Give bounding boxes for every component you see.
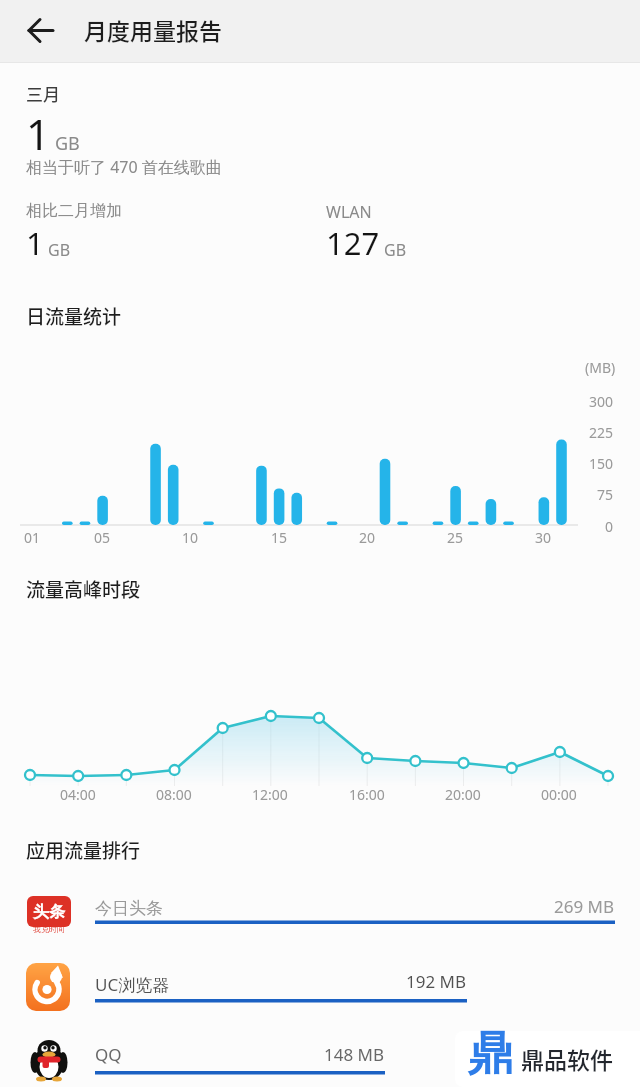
- staticText: 三月: [26, 81, 60, 106]
- staticText: 15: [271, 528, 288, 547]
- staticText: 鼎品软件: [521, 1042, 613, 1075]
- staticText: 25: [447, 528, 464, 547]
- staticText: 127: [326, 222, 380, 264]
- staticText: 相比二月增加: [26, 201, 122, 221]
- staticText: 应用流量排行: [26, 836, 141, 864]
- staticText: 30: [535, 528, 552, 547]
- button[interactable]: [16, 1028, 624, 1087]
- staticText: 269 MB: [554, 895, 615, 918]
- button[interactable]: [16, 956, 624, 1018]
- staticText: 头条: [33, 902, 65, 922]
- staticText: GB: [55, 131, 80, 156]
- staticText: 20:00: [445, 785, 481, 804]
- staticText: 1: [26, 105, 51, 162]
- staticText: GB: [384, 239, 407, 261]
- staticText: 16:00: [349, 785, 385, 804]
- staticText: 225: [589, 423, 614, 442]
- staticText: 鼎: [467, 1025, 513, 1083]
- staticText: 月度用量报告: [84, 13, 222, 46]
- staticText: 12:00: [252, 785, 288, 804]
- staticText: 01: [24, 528, 41, 547]
- staticText: 192 MB: [406, 970, 467, 993]
- staticText: 75: [597, 485, 614, 504]
- staticText: (MB): [585, 358, 616, 377]
- staticText: 我克时间: [33, 924, 65, 934]
- button[interactable]: [16, 886, 624, 948]
- staticText: 150: [589, 454, 614, 473]
- staticText: 00:00: [541, 785, 577, 804]
- staticText: 相当于听了 470 首在线歌曲: [26, 156, 222, 178]
- button[interactable]: [455, 1031, 640, 1087]
- staticText: 04:00: [60, 785, 96, 804]
- staticText: 300: [589, 392, 614, 411]
- staticText: 148 MB: [324, 1043, 385, 1066]
- staticText: WLAN: [326, 201, 372, 223]
- staticText: GB: [48, 239, 71, 261]
- staticText: 0: [605, 517, 614, 536]
- staticText: 05: [94, 528, 111, 547]
- staticText: 流量高峰时段: [26, 575, 141, 603]
- staticText: UC浏览器: [95, 973, 170, 996]
- staticText: 日流量统计: [26, 302, 122, 330]
- button[interactable]: [16, 6, 66, 56]
- staticText: 今日头条: [95, 898, 163, 919]
- staticText: QQ: [95, 1043, 122, 1066]
- staticText: 20: [359, 528, 376, 547]
- staticText: 1: [26, 222, 44, 264]
- staticText: 10: [182, 528, 199, 547]
- staticText: 08:00: [156, 785, 192, 804]
